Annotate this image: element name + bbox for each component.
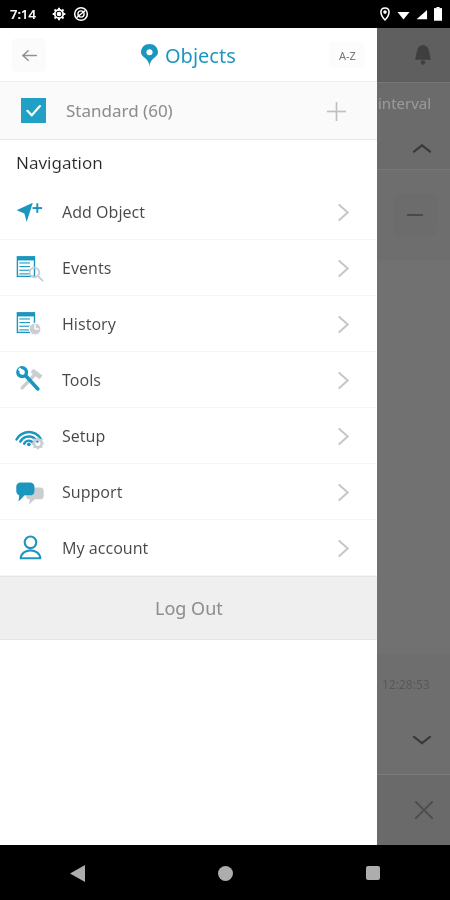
staticText: My account — [62, 537, 149, 559]
button[interactable]: Back — [60, 856, 94, 890]
button[interactable]: My account — [0, 520, 377, 576]
staticText: Log Out — [155, 596, 223, 621]
button[interactable]: Log Out — [0, 577, 377, 639]
button[interactable]: Setup — [0, 408, 377, 464]
button[interactable]: Back — [12, 38, 46, 72]
staticText: Tools — [62, 369, 101, 391]
staticText: A-Z — [339, 48, 356, 63]
staticText: 7:14 — [10, 5, 36, 23]
button[interactable]: Tools — [0, 352, 377, 408]
button[interactable]: History — [0, 296, 377, 352]
staticText: Objects — [165, 42, 236, 69]
button[interactable]: Events — [0, 240, 377, 296]
button[interactable]: Add group — [321, 96, 351, 126]
staticText: History — [62, 313, 116, 335]
staticText: 12:28:53 — [382, 676, 430, 692]
staticText: interval — [378, 93, 432, 113]
button[interactable]: Standard (60) — [0, 82, 377, 139]
staticText: Navigation — [16, 151, 103, 174]
staticText: Add Object — [62, 201, 146, 223]
staticText: Events — [62, 257, 112, 279]
button[interactable]: Support — [0, 464, 377, 520]
button[interactable]: Recent apps — [356, 856, 390, 890]
staticText: Standard (60) — [66, 99, 173, 122]
button[interactable]: Sort A-Z — [329, 42, 365, 68]
button[interactable]: Home — [208, 856, 242, 890]
button[interactable]: Add Object — [0, 184, 377, 240]
staticText: Support — [62, 481, 123, 503]
staticText: Setup — [62, 425, 106, 447]
